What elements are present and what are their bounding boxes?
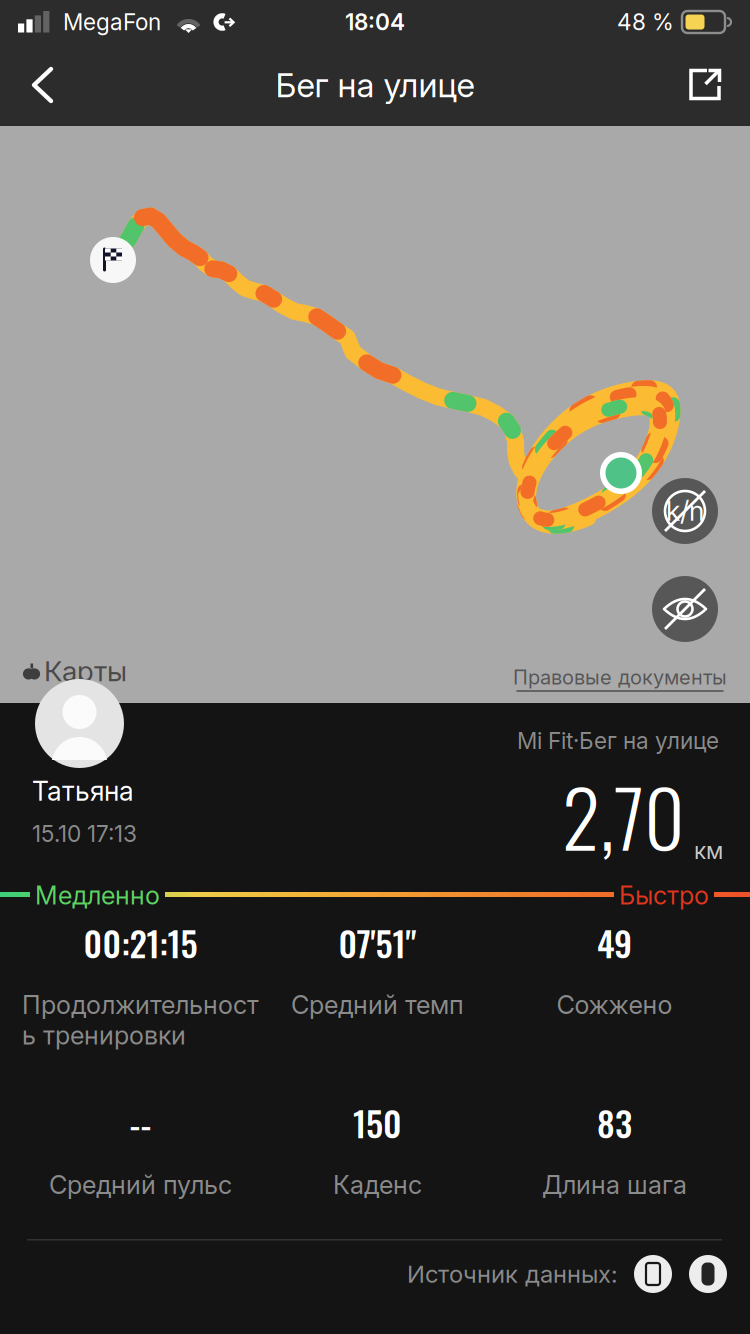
button[interactable]: Телефон [634,1255,672,1293]
staticText: Бег на улице [275,65,474,105]
button[interactable]: Отметки километров [652,478,718,544]
staticText: 18:04 [345,8,405,36]
staticText: 49 [597,917,632,968]
staticText: Медленно [35,880,160,911]
staticText: 83 [597,1097,632,1148]
staticText: Средний темп [291,989,464,1020]
staticText: Каденс [333,1169,422,1200]
staticText: 15.10 17:13 [32,820,137,847]
staticText: Продолжительност ь тренировки [22,989,259,1051]
staticText: Быстро [619,880,709,911]
staticText: Длина шага [542,1169,687,1200]
staticText: k/n [666,495,704,527]
staticText: 48 % [617,8,674,36]
staticText: км [694,837,723,865]
staticText: 150 [353,1097,402,1148]
staticText: Средний пульс [49,1169,232,1200]
staticText: Татьяна [32,775,134,807]
staticText: MegaFon [63,8,161,36]
button[interactable]: Показать трек [652,576,718,642]
staticText: 07'51" [338,917,416,968]
staticText: 2,70 [562,757,685,874]
staticText: Правовые документы [513,665,727,689]
staticText: Карты [44,654,127,688]
staticText: Mi Fit·Бег на улице [517,727,719,754]
button[interactable]: Правовые документы [513,665,727,692]
staticText: Источник данных: [407,1259,618,1288]
staticText: Сожжено [556,989,672,1020]
button[interactable]: Назад [28,63,60,107]
staticText: -- [129,1097,151,1148]
staticText: 00:21:15 [83,917,197,968]
button[interactable]: Браслет [689,1255,727,1293]
button[interactable]: Поделиться [689,68,722,101]
